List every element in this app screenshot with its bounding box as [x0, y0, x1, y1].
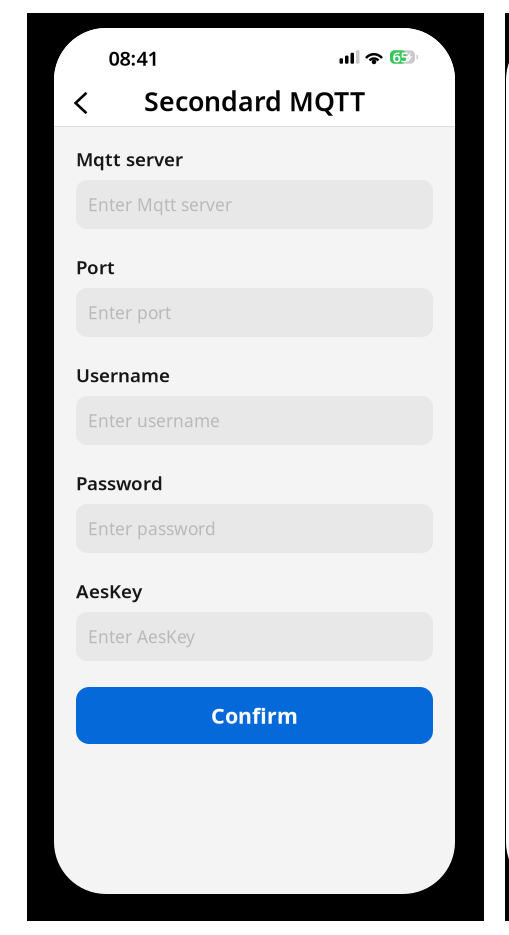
staticText: Enter username [88, 409, 220, 432]
button[interactable]: Enter port [76, 288, 433, 337]
button[interactable]: Enter password [76, 504, 433, 553]
button[interactable]: Enter username [76, 396, 433, 445]
staticText: Enter password [88, 517, 216, 540]
staticText: Password [76, 471, 163, 495]
button[interactable]: Back [59, 81, 103, 125]
button[interactable]: Enter Mqtt server [76, 180, 433, 229]
staticText: 08:41 [108, 45, 158, 71]
staticText: 65 [392, 47, 408, 67]
button[interactable]: Enter AesKey [76, 612, 433, 661]
staticText: Mqtt server [76, 147, 183, 171]
staticText: Enter port [88, 301, 171, 324]
staticText: AesKey [76, 579, 142, 603]
button[interactable]: Confirm [76, 687, 433, 744]
staticText: Enter AesKey [88, 625, 195, 648]
staticText: Secondard MQTT [144, 83, 365, 119]
staticText: Enter Mqtt server [88, 193, 232, 216]
staticText: Username [76, 363, 170, 387]
staticText: Confirm [211, 701, 298, 730]
staticText: Port [76, 255, 115, 279]
